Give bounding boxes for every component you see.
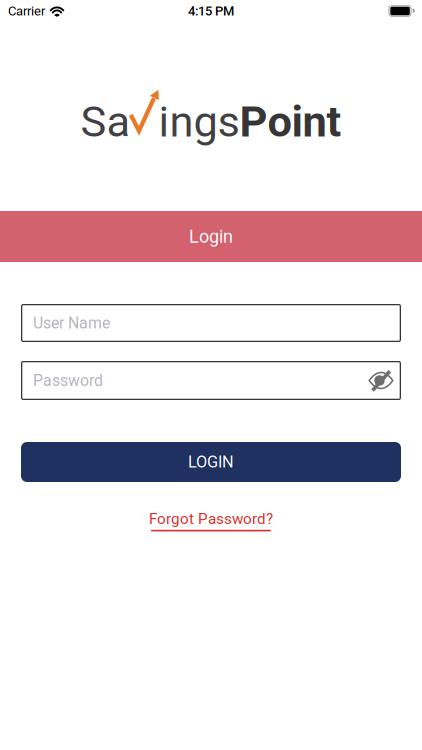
button[interactable]: Show password: [368, 369, 394, 392]
staticText: 4:15 PM: [188, 3, 234, 19]
staticText: Forgot Password?: [149, 510, 273, 528]
staticText: Password: [33, 365, 137, 395]
staticText: Sa: [80, 96, 130, 147]
button[interactable]: LOGIN: [21, 442, 401, 482]
staticText: Carrier: [8, 3, 45, 19]
staticText: ings: [158, 96, 239, 147]
textField[interactable]: Password: [33, 365, 401, 395]
staticText: Login: [189, 226, 233, 247]
staticText: LOGIN: [188, 452, 234, 471]
staticText: User Name: [33, 308, 153, 338]
staticText: Point: [239, 96, 341, 147]
staticText: Password: [33, 371, 103, 390]
button[interactable]: Forgot Password?: [149, 510, 273, 531]
textField[interactable]: User Name: [33, 308, 401, 338]
staticText: User Name: [33, 314, 110, 332]
